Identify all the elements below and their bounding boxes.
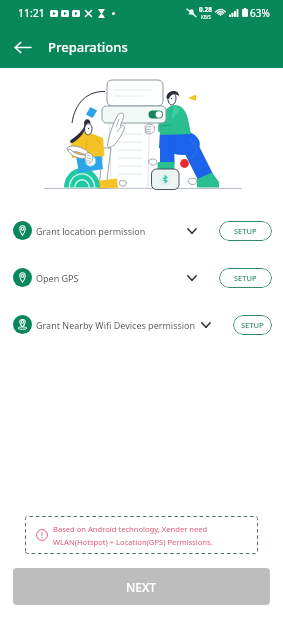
button[interactable]: SETUP bbox=[219, 268, 272, 288]
button[interactable]: Expand bbox=[182, 268, 202, 288]
button[interactable]: Grant location permission bbox=[0, 207, 283, 254]
button[interactable]: Expand bbox=[196, 315, 216, 335]
button[interactable]: SETUP bbox=[219, 221, 272, 241]
button[interactable]: Expand bbox=[182, 221, 202, 241]
staticText: Preparations bbox=[48, 38, 128, 56]
staticText: WLAN(Hotspot) + Location(GPS) Permission… bbox=[53, 537, 213, 547]
staticText: SETUP bbox=[241, 320, 264, 330]
staticText: NEXT bbox=[126, 579, 157, 595]
staticText: 11:21 bbox=[18, 6, 45, 20]
button[interactable]: Open GPS bbox=[0, 254, 283, 301]
staticText: 0.28 bbox=[199, 5, 212, 14]
button[interactable]: SETUP bbox=[233, 315, 272, 335]
staticText: 63% bbox=[250, 6, 270, 20]
button[interactable]: NEXT bbox=[13, 568, 270, 605]
staticText: Based on Android technology, Xender need bbox=[53, 524, 208, 534]
staticText: SETUP bbox=[234, 273, 257, 283]
staticText: KB/S bbox=[201, 14, 211, 20]
staticText: SETUP bbox=[234, 226, 257, 236]
staticText: Grant Nearby Wifi Devices permission bbox=[36, 319, 196, 331]
staticText: Open GPS bbox=[36, 272, 79, 284]
button[interactable]: Grant Nearby Wifi Devices permission bbox=[0, 301, 283, 348]
button[interactable]: Back bbox=[7, 32, 37, 62]
staticText: Grant location permission bbox=[36, 225, 146, 237]
